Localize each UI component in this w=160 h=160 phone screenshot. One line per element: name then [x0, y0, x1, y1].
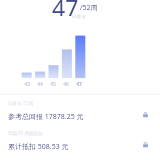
other: Locked: [142, 141, 149, 148]
staticText: 参考总回报 17878.25 元: [8, 112, 84, 122]
button[interactable]: 已参与 73 周: [0, 100, 160, 126]
staticText: 已参与: [72, 14, 86, 20]
staticText: 47: [74, 81, 84, 88]
staticText: 43: [22, 81, 32, 88]
button[interactable]: 定期 67 周期抵扣: [0, 130, 160, 156]
other: Locked: [142, 111, 149, 118]
staticText: 45: [48, 81, 58, 88]
staticText: 44: [35, 81, 45, 88]
staticText: 已参与 73 周: [8, 100, 34, 106]
staticText: 定期 67 周期抵扣: [8, 130, 43, 136]
staticText: /52周: [80, 3, 98, 13]
staticText: 46: [61, 81, 71, 88]
staticText: 47: [52, 0, 79, 16]
staticText: 累计抵扣 508.53 元: [8, 142, 69, 152]
